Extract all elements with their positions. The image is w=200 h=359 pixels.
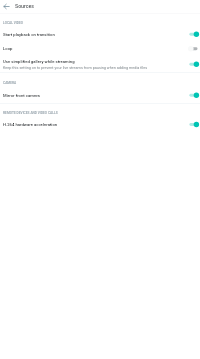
staticText: REMOTE DEVICES AND VIDEO CALLS: [3, 111, 58, 115]
staticText: LOCAL VIDEO: [3, 21, 23, 25]
button[interactable]: Start playback on transition: [0, 26, 200, 42]
staticText: Start playback on transition: [3, 32, 55, 37]
staticText: Sources: [15, 3, 34, 9]
button[interactable]: Use simplified gallery while streaming: [0, 56, 200, 73]
staticText: Use simplified gallery while streaming: [3, 59, 75, 64]
staticText: Mirror front camera: [3, 93, 40, 98]
button[interactable]: Mirror front camera: [0, 87, 200, 103]
button[interactable]: Toggle off: [188, 44, 199, 54]
button[interactable]: Toggle on: [188, 59, 199, 69]
button[interactable]: Loop: [0, 42, 200, 56]
button[interactable]: Back: [0, 0, 13, 13]
button[interactable]: Toggle on: [188, 29, 199, 39]
staticText: Loop: [3, 46, 12, 51]
staticText: Keep this setting on to prevent your liv…: [3, 65, 147, 70]
button[interactable]: Toggle on: [188, 119, 199, 129]
staticText: CAMERA: [3, 81, 16, 85]
button[interactable]: H.264 hardware acceleration: [0, 117, 200, 132]
staticText: H.264 hardware acceleration: [3, 122, 57, 127]
button[interactable]: Toggle on: [188, 90, 199, 100]
